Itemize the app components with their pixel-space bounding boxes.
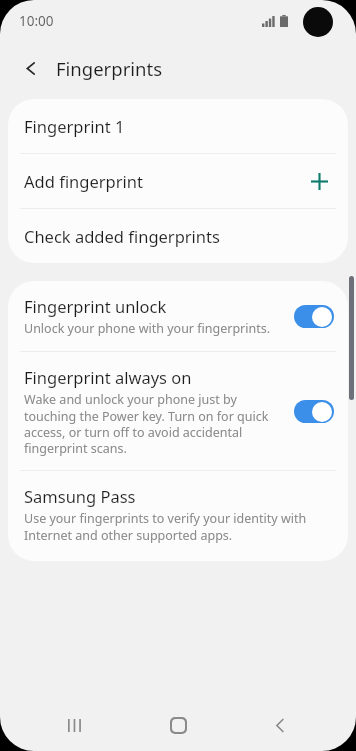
staticText: Fingerprint always on (24, 366, 192, 388)
staticText: Fingerprint unlock (24, 295, 167, 317)
button[interactable]: Back (16, 53, 46, 83)
button[interactable]: Fingerprint always on (8, 352, 348, 470)
staticText: Unlock your phone with your fingerprints… (24, 320, 271, 337)
staticText: Wake and unlock your phone just by touch… (24, 391, 286, 456)
button[interactable]: Toggle (294, 400, 334, 423)
staticText: Fingerprints (56, 56, 163, 81)
button[interactable]: Home (152, 699, 204, 751)
staticText: Use your fingerprints to verify your ide… (24, 510, 308, 543)
button[interactable]: Back (254, 699, 306, 751)
button[interactable]: Recents (50, 699, 102, 751)
staticText: Add fingerprint (24, 170, 143, 192)
staticText: Fingerprint 1 (24, 115, 125, 137)
staticText: 10:00 (19, 12, 54, 30)
staticText: Check added fingerprints (24, 225, 220, 247)
button[interactable]: Add fingerprint (8, 154, 348, 208)
button[interactable]: Samsung Pass (8, 471, 348, 561)
button[interactable]: Fingerprint unlock (8, 281, 348, 351)
button[interactable]: Toggle (294, 305, 334, 328)
button[interactable]: Fingerprint 1 (8, 99, 348, 153)
staticText: Samsung Pass (24, 485, 136, 507)
button[interactable]: Check added fingerprints (8, 209, 348, 263)
